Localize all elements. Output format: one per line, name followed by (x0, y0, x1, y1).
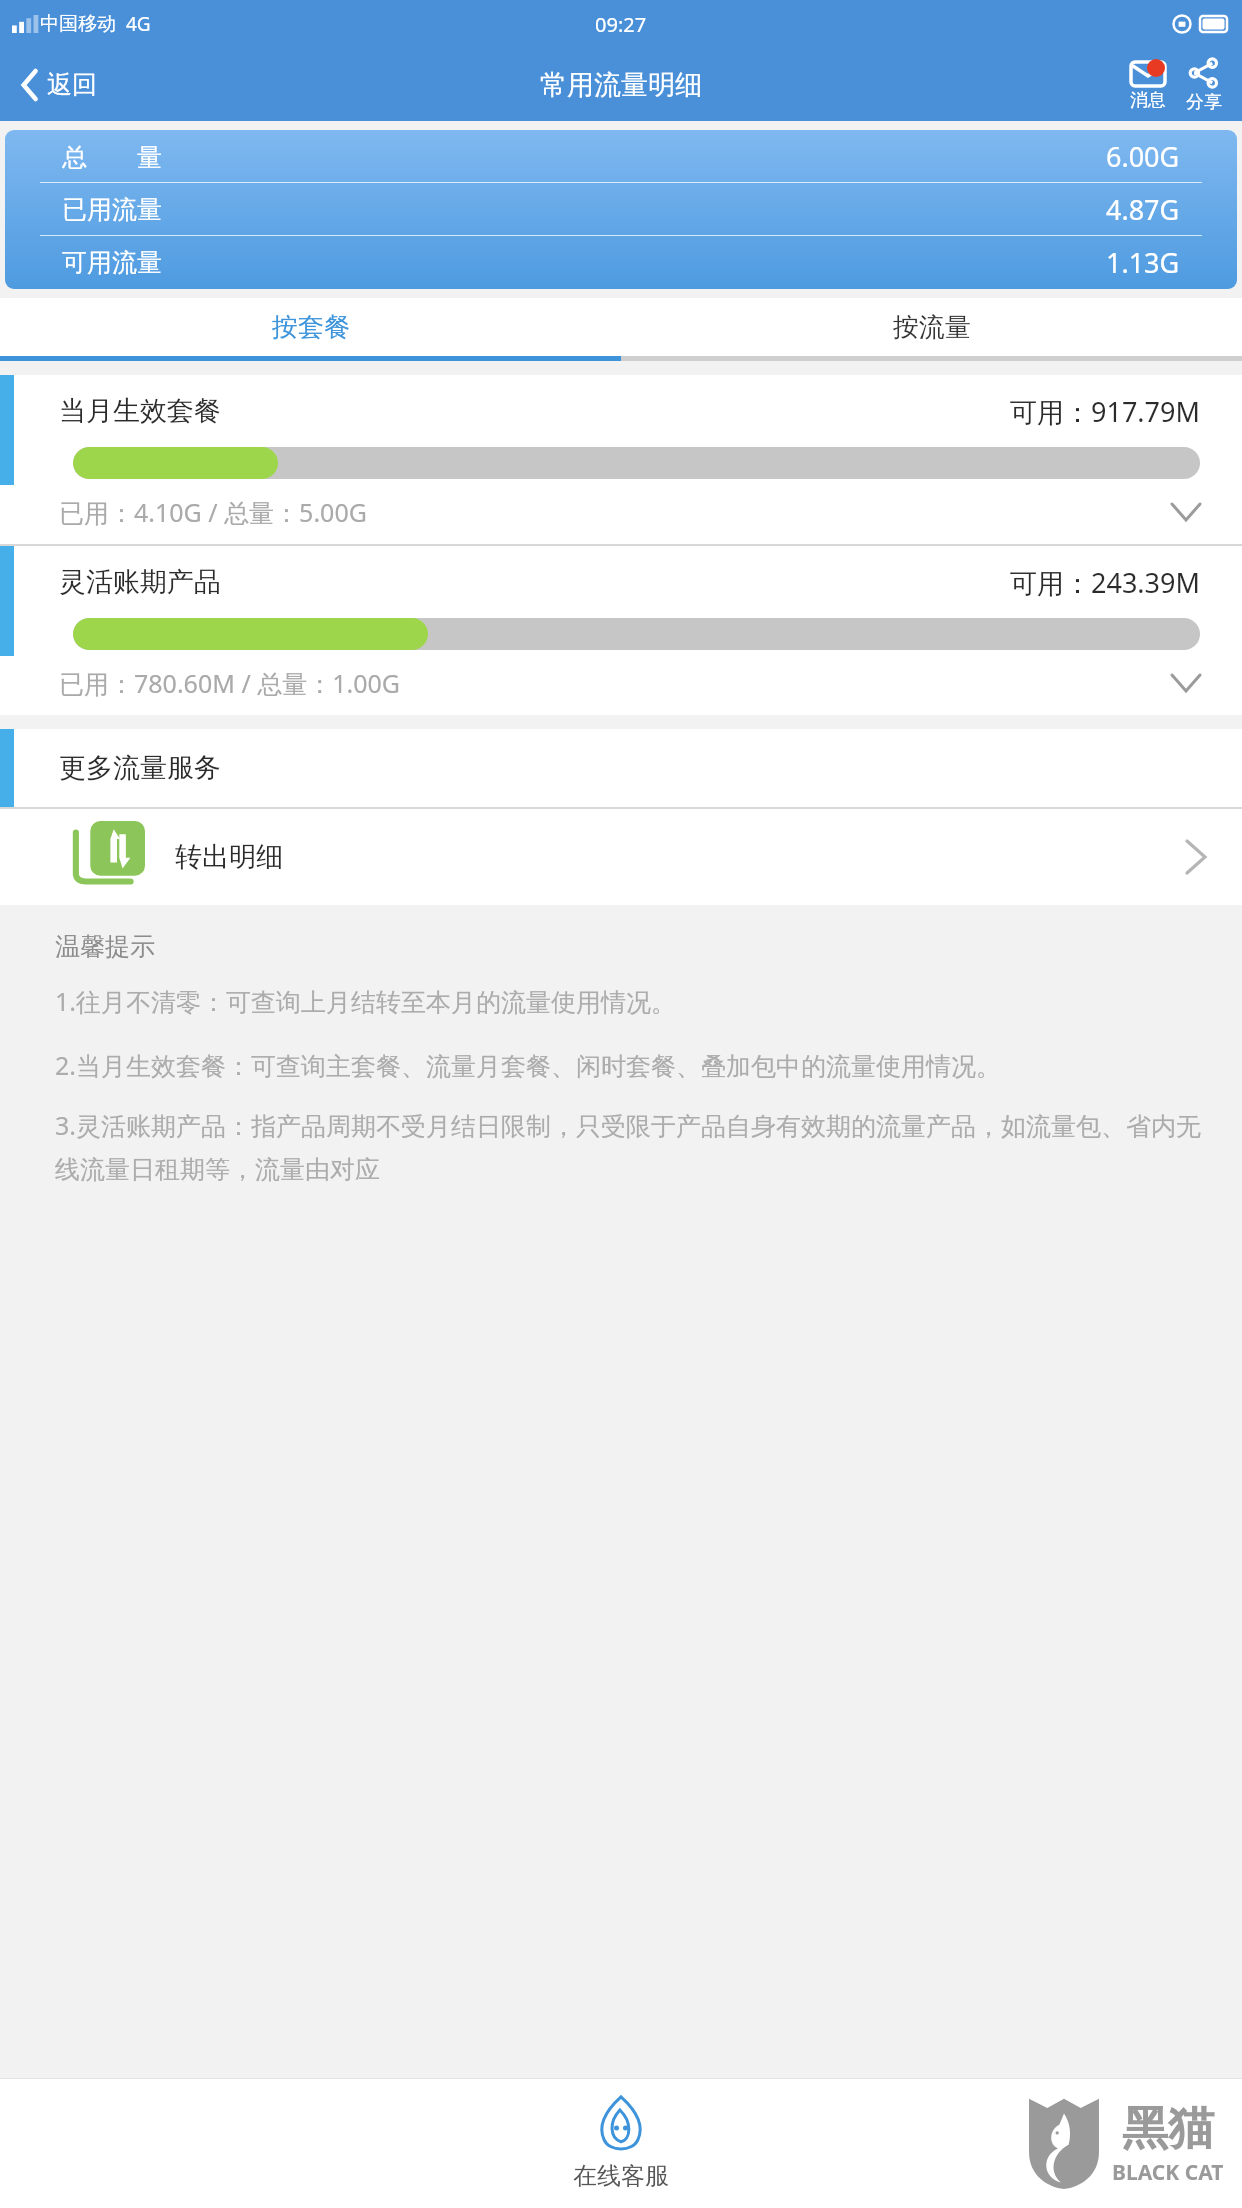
staticText: 6.00G (1106, 138, 1180, 175)
staticText: 可用：243.39M (1010, 564, 1200, 601)
staticText: 2.当月生效套餐：可查询主套餐、流量月套餐、闲时套餐、叠加包中的流量使用情况。 (55, 1048, 1002, 1082)
staticText: 黑猫 (1122, 2100, 1214, 2158)
staticText: 常用流量明细 (540, 68, 702, 102)
button[interactable]: 灵活账期产品 (0, 546, 1242, 715)
staticText: 按流量 (893, 311, 971, 344)
staticText: 中国移动 (40, 12, 116, 36)
staticText: 转出明细 (175, 840, 283, 874)
button[interactable]: 转出明细 (0, 809, 1242, 905)
staticText: 09:27 (595, 11, 647, 38)
staticText: 返回 (47, 69, 97, 100)
staticText: 已用流量 (62, 194, 162, 225)
staticText: 按套餐 (272, 311, 350, 344)
staticText: 3.灵活账期产品：指产品周期不受月结日限制，只受限于产品自身有效期的流量产品，如… (55, 1108, 1202, 1186)
staticText: BLACK CAT (1112, 2158, 1224, 2187)
staticText: 已用：780.60M / 总量：1.00G (59, 666, 400, 700)
button[interactable]: 消息 (1120, 57, 1176, 114)
button[interactable]: 在线客服 (553, 2095, 689, 2191)
staticText: 4G (126, 11, 151, 37)
staticText: 更多流量服务 (59, 751, 221, 785)
staticText: 灵活账期产品 (59, 565, 221, 599)
staticText: 已用：4.10G / 总量：5.00G (59, 495, 367, 529)
button[interactable]: 按流量 (621, 298, 1242, 356)
staticText: 可用流量 (62, 247, 162, 278)
staticText: 在线客服 (573, 2161, 669, 2191)
staticText: 温馨提示 (55, 931, 155, 962)
staticText: 消息 (1130, 89, 1166, 112)
button[interactable]: 当月生效套餐 (0, 375, 1242, 544)
staticText: 分享 (1186, 91, 1222, 114)
button[interactable]: 按套餐 (0, 298, 621, 356)
staticText: 总 量 (62, 139, 162, 173)
staticText: 1.13G (1106, 244, 1180, 281)
staticText: 4.87G (1106, 191, 1180, 228)
staticText: 1.往月不清零：可查询上月结转至本月的流量使用情况。 (55, 984, 677, 1018)
staticText: 当月生效套餐 (59, 394, 221, 428)
staticText: 可用：917.79M (1010, 393, 1200, 430)
button[interactable]: 分享 (1176, 54, 1232, 116)
button[interactable]: 返回 (14, 63, 105, 106)
